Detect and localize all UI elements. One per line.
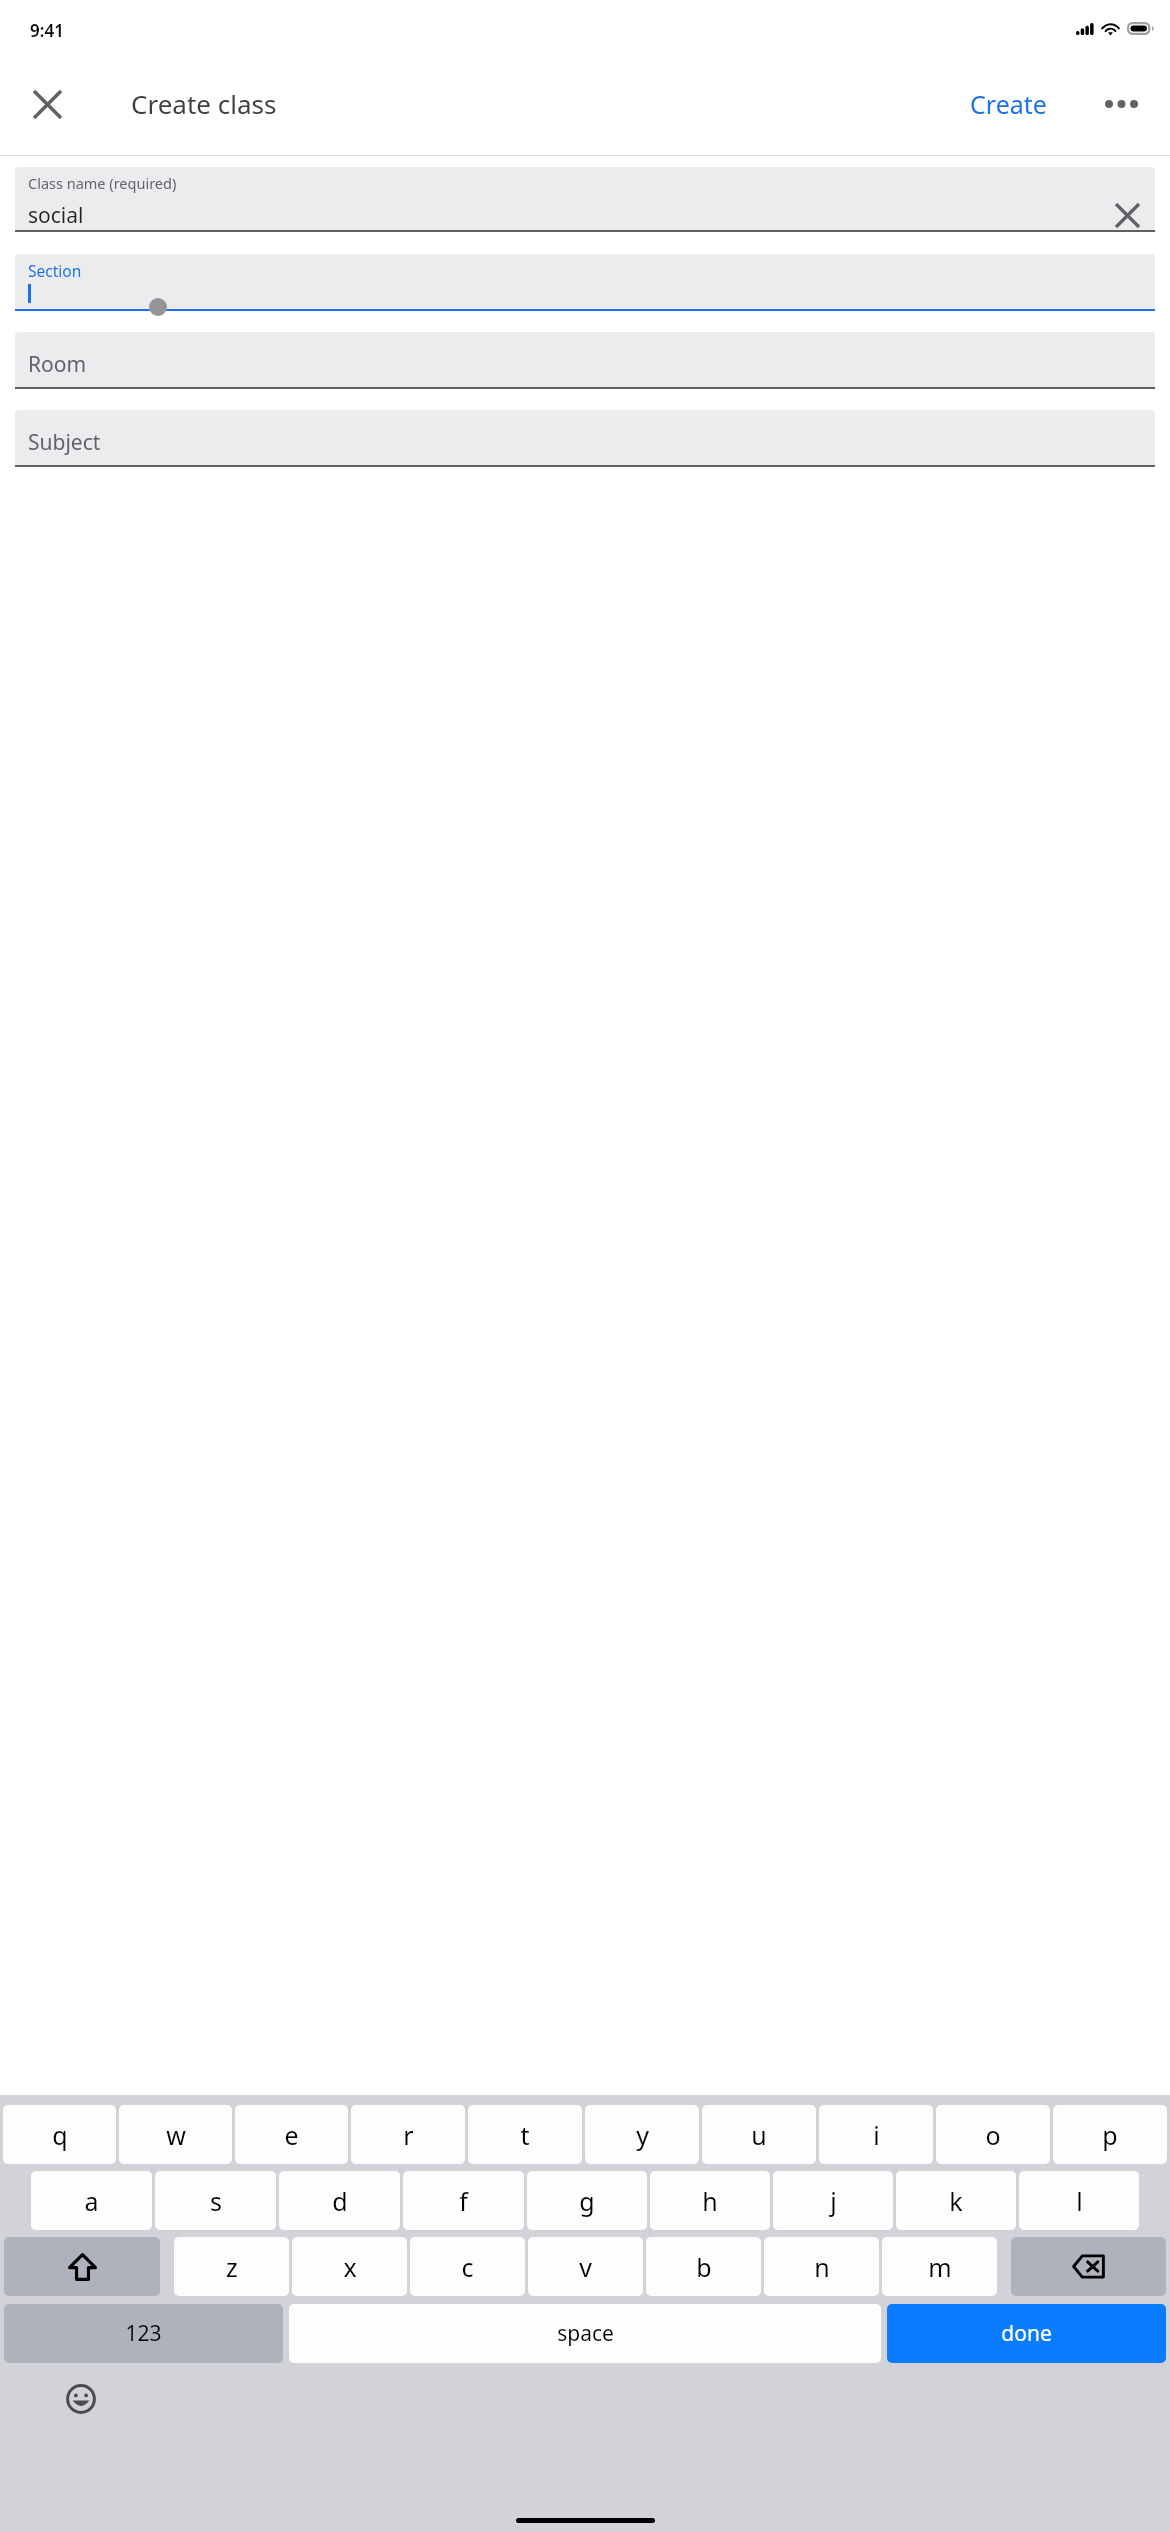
staticText: r (403, 2118, 414, 2152)
button[interactable]: n (764, 2237, 879, 2296)
staticText: s (210, 2184, 222, 2218)
button[interactable]: More options (1092, 75, 1150, 133)
staticText: q (52, 2118, 68, 2152)
staticText: p (1102, 2118, 1118, 2152)
button[interactable]: space (289, 2304, 881, 2363)
staticText: n (814, 2250, 830, 2284)
staticText: x (343, 2250, 357, 2284)
button[interactable]: Emoji keyboard (55, 2373, 107, 2425)
button[interactable]: e (235, 2105, 348, 2164)
staticText: space (557, 2319, 614, 2348)
button[interactable]: Room (15, 332, 1155, 389)
button[interactable]: k (896, 2171, 1016, 2230)
staticText: t (520, 2118, 530, 2152)
button[interactable]: Create (960, 75, 1057, 133)
button[interactable]: h (650, 2171, 770, 2230)
button[interactable]: a (31, 2171, 152, 2230)
button[interactable]: x (292, 2237, 407, 2296)
staticText: h (702, 2184, 718, 2218)
button[interactable]: c (410, 2237, 525, 2296)
staticText: a (84, 2184, 99, 2218)
button[interactable]: z (174, 2237, 289, 2296)
button[interactable]: o (936, 2105, 1050, 2164)
button[interactable]: v (528, 2237, 643, 2296)
staticText: l (1076, 2184, 1083, 2218)
staticText: o (985, 2118, 1001, 2152)
staticText: j (830, 2184, 837, 2218)
button[interactable]: Shift (4, 2237, 160, 2296)
staticText: done (1001, 2319, 1052, 2348)
staticText: m (928, 2250, 952, 2284)
staticText: w (166, 2118, 186, 2152)
staticText: e (284, 2118, 299, 2152)
button[interactable]: y (585, 2105, 699, 2164)
button[interactable]: 123 (4, 2304, 283, 2363)
staticText: Class name (required) (28, 173, 177, 193)
button[interactable]: Subject (15, 410, 1155, 467)
staticText: Subject (28, 428, 101, 457)
button[interactable]: g (527, 2171, 647, 2230)
staticText: Create (970, 87, 1047, 121)
staticText: Create class (131, 86, 277, 121)
button[interactable]: Class name (required) (15, 167, 1155, 232)
button[interactable]: r (351, 2105, 465, 2164)
staticText: 9:41 (30, 19, 64, 42)
staticText: Section (28, 260, 82, 281)
button[interactable]: d (279, 2171, 400, 2230)
staticText: v (579, 2250, 592, 2284)
button[interactable]: j (773, 2171, 893, 2230)
button[interactable]: w (119, 2105, 232, 2164)
button[interactable]: p (1053, 2105, 1167, 2164)
button[interactable]: Backspace (1011, 2237, 1166, 2296)
staticText: social (28, 201, 1108, 230)
button[interactable]: Clear text (1108, 200, 1146, 230)
staticText: 123 (125, 2319, 162, 2348)
button[interactable]: b (646, 2237, 761, 2296)
button[interactable]: Section (15, 254, 1155, 311)
staticText: y (636, 2118, 649, 2152)
staticText: g (579, 2184, 595, 2218)
button[interactable]: l (1019, 2171, 1139, 2230)
staticText: u (751, 2118, 767, 2152)
button[interactable]: f (403, 2171, 524, 2230)
staticText: b (696, 2250, 712, 2284)
button[interactable]: Close (18, 75, 76, 133)
staticText: f (459, 2184, 468, 2218)
button[interactable]: i (819, 2105, 933, 2164)
button[interactable]: t (468, 2105, 582, 2164)
staticText: c (461, 2250, 474, 2284)
staticText: i (873, 2118, 880, 2152)
button[interactable]: u (702, 2105, 816, 2164)
button[interactable]: done (887, 2304, 1166, 2363)
button[interactable]: s (155, 2171, 276, 2230)
button[interactable]: q (3, 2105, 116, 2164)
staticText: z (226, 2250, 238, 2284)
staticText: Room (28, 350, 87, 379)
staticText: d (332, 2184, 348, 2218)
staticText: k (949, 2184, 963, 2218)
button[interactable]: m (882, 2237, 997, 2296)
